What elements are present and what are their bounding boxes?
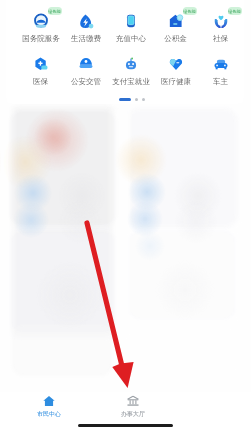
staticText: 绿色能量 — [48, 9, 62, 14]
button[interactable]: 市民中心 — [24, 395, 74, 418]
button[interactable]: 绿色能量 — [153, 14, 198, 43]
staticText: 绿色能量 — [228, 9, 242, 14]
staticText: 医保 — [33, 77, 48, 86]
staticText: 支付宝就业 — [112, 77, 150, 86]
button[interactable]: 车主 — [198, 57, 243, 86]
staticText: 充值中心 — [116, 34, 146, 43]
staticText: 社保 — [213, 34, 228, 43]
staticText: 公安交管 — [71, 77, 101, 86]
staticText: 市民中心 — [37, 410, 61, 418]
button[interactable]: 生活缴费 — [63, 14, 108, 43]
button[interactable]: 公安交管 — [63, 57, 108, 86]
staticText: 办事大厅 — [121, 410, 145, 418]
button[interactable]: 充值中心 — [108, 14, 153, 43]
staticText: 医疗健康 — [161, 77, 191, 86]
button[interactable]: 医疗健康 — [153, 57, 198, 86]
button[interactable]: 办事大厅 — [108, 395, 158, 418]
staticText: 生活缴费 — [71, 34, 101, 43]
button[interactable]: 绿色能量 — [18, 14, 63, 43]
button[interactable]: 医保 — [18, 57, 63, 86]
staticText: 绿色能量 — [183, 9, 197, 14]
button[interactable]: 支付宝就业 — [108, 57, 153, 86]
staticText: 公积金 — [164, 34, 187, 43]
staticText: 国务院服务 — [22, 34, 60, 43]
staticText: 车主 — [213, 77, 228, 86]
button[interactable]: 绿色能量 — [198, 14, 243, 43]
